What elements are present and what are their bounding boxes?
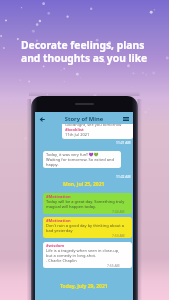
staticText: - Charlie Chaplin [46,258,77,263]
staticText: Story of Mine [49,115,119,123]
staticText: 11th Jul 2021 [65,132,90,137]
button[interactable]: Goodnight, see you tomorrow [62,124,133,139]
button[interactable]: #Motivation [43,217,132,238]
staticText: Don't ruin a good day by thinking about … [46,223,125,228]
staticText: 11:21 AM [116,140,131,144]
staticText: #Motivation [46,194,71,199]
staticText: happy. [46,162,59,167]
button[interactable]: #wisdom [43,242,132,268]
staticText: 11:22 AM [116,174,131,178]
staticText: Waiting for tomorrow. So exited and [46,157,114,162]
button[interactable]: Mon, Jul 25, 2021 [63,181,105,188]
staticText: magical will happen today. [46,204,96,209]
staticText: Decorate feelings, plans and thoughts as… [21,38,148,65]
button[interactable]: Today, it was very fun!!💜💚 [43,151,121,168]
staticText: Goodnight, see you tomorrow [65,124,122,127]
staticText: Life is a tragedy when seen in close-up, [46,248,120,253]
staticText: Today, it was very fun!!💜💚 [46,152,99,157]
staticText: but a comedy in long-shot. [46,253,97,258]
staticText: 7:44 AM [112,209,125,213]
staticText: 7:55 AM [107,263,120,267]
button[interactable]: #Motivation [43,193,132,214]
staticText: bad yesterday [46,228,73,233]
staticText: #Motivation [46,218,71,223]
button[interactable]: Menu [119,112,133,126]
staticText: 7:53 AM [112,233,125,237]
button[interactable]: Today, July 29, 2021 [60,283,108,290]
staticText: #wisdom [46,243,65,248]
staticText: Today will be a great day. Something tru… [46,199,125,204]
staticText: #booklist [65,127,84,132]
button[interactable]: Back [35,112,49,126]
